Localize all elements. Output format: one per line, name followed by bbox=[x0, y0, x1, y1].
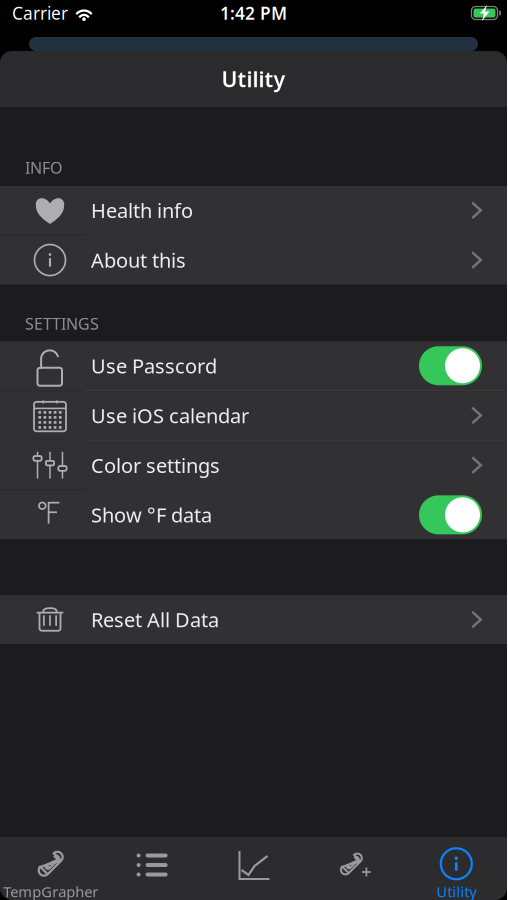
staticText: Health info bbox=[91, 197, 193, 224]
button[interactable]: Reset All Data bbox=[0, 595, 507, 644]
staticText: Reset All Data bbox=[91, 606, 219, 633]
staticText: Utility bbox=[221, 65, 285, 93]
button[interactable]: Show °F data bbox=[0, 490, 507, 539]
staticText: Color settings bbox=[91, 452, 220, 478]
button[interactable]: About this bbox=[0, 236, 507, 284]
staticText: 1:42 PM bbox=[220, 1, 287, 24]
button[interactable]: Color settings bbox=[0, 441, 507, 489]
staticText: About this bbox=[91, 247, 186, 273]
button[interactable]: Health info bbox=[0, 186, 507, 235]
staticText: Use Passcord bbox=[91, 352, 217, 379]
button[interactable]: Tab bbox=[203, 837, 304, 900]
staticText: Utility bbox=[436, 882, 476, 900]
button[interactable]: TempGrapher bbox=[0, 837, 101, 900]
button[interactable]: Use iOS calendar bbox=[0, 391, 507, 440]
staticText: Show °F data bbox=[91, 502, 212, 528]
staticText: TempGrapher bbox=[3, 882, 98, 900]
staticText: Use iOS calendar bbox=[91, 402, 249, 429]
staticText: Carrier bbox=[12, 1, 68, 24]
button[interactable]: Use Passcord bbox=[0, 341, 507, 390]
staticText: SETTINGS bbox=[25, 313, 99, 334]
button[interactable]: Tab bbox=[304, 837, 406, 900]
staticText: INFO bbox=[25, 157, 62, 178]
button[interactable]: Tab bbox=[101, 837, 203, 900]
button[interactable]: Utility bbox=[406, 837, 507, 900]
